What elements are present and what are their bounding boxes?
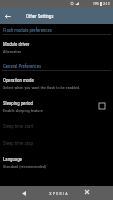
button[interactable]: Back: [13, 186, 34, 200]
button[interactable]: XPERIA: [40, 186, 75, 200]
staticText: Standard (recommended): [3, 164, 47, 169]
staticText: Operation mode: [3, 77, 34, 83]
staticText: 19%: [93, 2, 99, 6]
staticText: Sleep time stop: [3, 140, 33, 146]
button[interactable]: Sleep time stop: [0, 134, 113, 151]
button[interactable]: Module driver: [0, 35, 113, 59]
button[interactable]: Close: [78, 186, 98, 200]
staticText: Alternative: [3, 49, 22, 54]
staticText: 2:12: [103, 1, 110, 6]
staticText: Sleeping period: [3, 100, 33, 106]
staticText: Enable sleeping feature: [3, 108, 43, 113]
staticText: General Preferences: [3, 64, 42, 70]
button[interactable]: Navigate up: [0, 8, 16, 24]
staticText: Module driver: [3, 41, 30, 47]
button[interactable]: Operation mode: [0, 71, 113, 95]
staticText: Language: [3, 156, 22, 162]
staticText: Other Settings: [26, 13, 54, 19]
button[interactable]: Sleep time start: [0, 118, 113, 134]
staticText: Flash module preferences: [3, 28, 52, 34]
staticText: XPERIA: [49, 191, 69, 196]
staticText: Select when you want the flash to be ena…: [3, 85, 81, 90]
button[interactable]: Sleeping period: [0, 95, 113, 118]
button[interactable]: Language: [0, 151, 113, 175]
staticText: Sleep time start: [3, 123, 34, 129]
